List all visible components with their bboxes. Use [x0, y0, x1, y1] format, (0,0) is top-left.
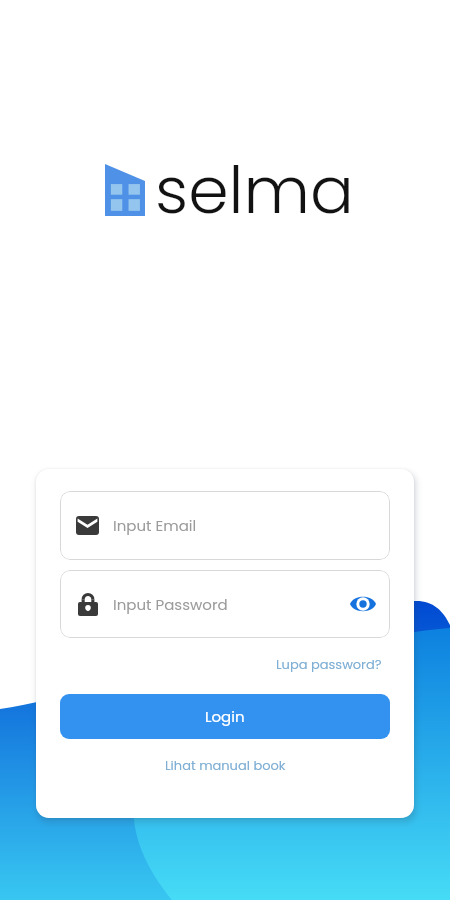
staticText: Login	[205, 706, 245, 727]
button[interactable]: Login	[60, 694, 390, 739]
button[interactable]: Input Email	[60, 491, 390, 560]
button[interactable]: Lupa password?	[276, 655, 382, 673]
staticText: Input Email	[113, 515, 197, 536]
staticText: selma	[155, 145, 354, 236]
button[interactable]: Lihat manual book	[165, 756, 286, 774]
button[interactable]: Show password	[350, 594, 376, 614]
staticText: Input Password	[113, 594, 228, 615]
button[interactable]: Input Password	[60, 570, 390, 638]
